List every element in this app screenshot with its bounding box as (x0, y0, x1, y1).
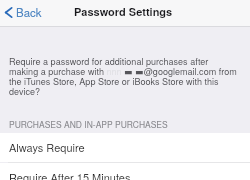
staticText: Require After 15 Minutes (9, 169, 131, 180)
staticText: PURCHASES AND IN-APP PURCHASES (9, 118, 168, 130)
staticText: Always Require (9, 139, 85, 155)
button[interactable]: Always Require (0, 133, 250, 162)
button[interactable]: Back (0, 1, 46, 23)
staticText: Require a password for additional purcha… (9, 55, 237, 97)
staticText: Password Settings (74, 4, 173, 20)
staticText: Back (16, 4, 42, 20)
button[interactable]: Require After 15 Minutes (0, 163, 250, 180)
